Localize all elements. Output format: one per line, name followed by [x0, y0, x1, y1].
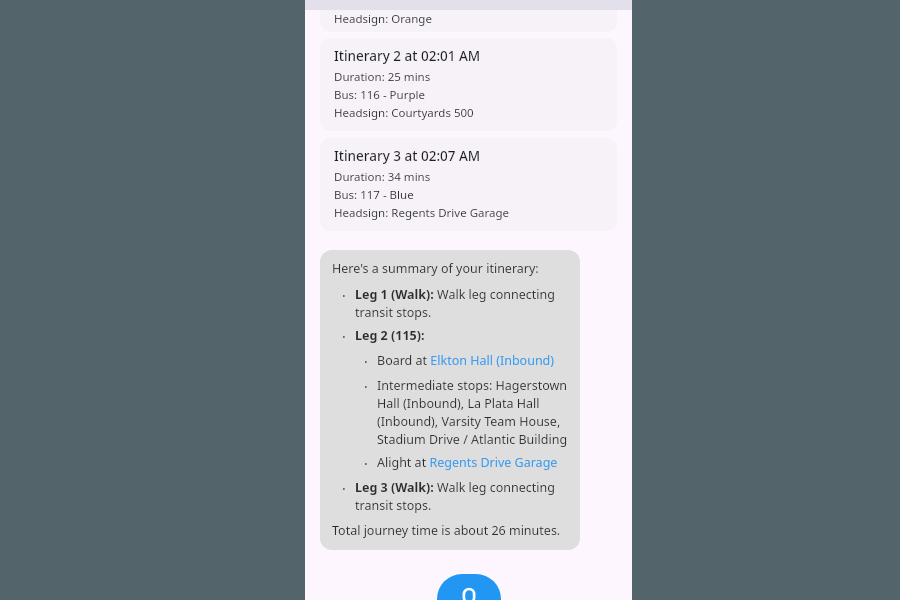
staticText: Duration: 25 mins: [334, 69, 431, 85]
staticText: Here's a summary of your itinerary:: [332, 260, 539, 277]
staticText: ·: [364, 377, 377, 396]
staticText: Headsign: Courtyards 500: [334, 105, 474, 121]
staticText: Duration: 34 mins: [334, 169, 431, 185]
staticText: Bus: 117 - Blue: [334, 187, 414, 203]
staticText: ·: [342, 327, 355, 346]
button[interactable]: Headsign: Orange: [320, 10, 617, 32]
staticText: Total journey time is about 26 minutes.: [332, 522, 561, 539]
button[interactable]: Itinerary 3 at 02:07 AM: [320, 138, 617, 231]
staticText: Leg 1 (Walk): Walk leg connecting transi…: [355, 286, 572, 321]
staticText: Alight at Regents Drive Garage: [377, 454, 558, 471]
staticText: ·: [364, 352, 377, 371]
staticText: Board at Elkton Hall (Inbound): [377, 352, 555, 369]
staticText: ·: [342, 479, 355, 498]
staticText: Bus: 116 - Purple: [334, 87, 425, 103]
staticText: Intermediate stops: Hagerstown Hall (Inb…: [377, 377, 572, 448]
button[interactable]: Voice input: [437, 574, 501, 600]
staticText: Headsign: Regents Drive Garage: [334, 205, 509, 221]
staticText: Leg 3 (Walk): Walk leg connecting transi…: [355, 479, 572, 514]
staticText: Leg 2 (115):: [355, 327, 425, 344]
staticText: Headsign: Orange: [334, 11, 432, 27]
staticText: Itinerary 3 at 02:07 AM: [334, 147, 481, 165]
staticText: ·: [364, 454, 377, 473]
staticText: Itinerary 2 at 02:01 AM: [334, 47, 481, 65]
button[interactable]: Itinerary 2 at 02:01 AM: [320, 38, 617, 131]
staticText: ·: [342, 286, 355, 305]
